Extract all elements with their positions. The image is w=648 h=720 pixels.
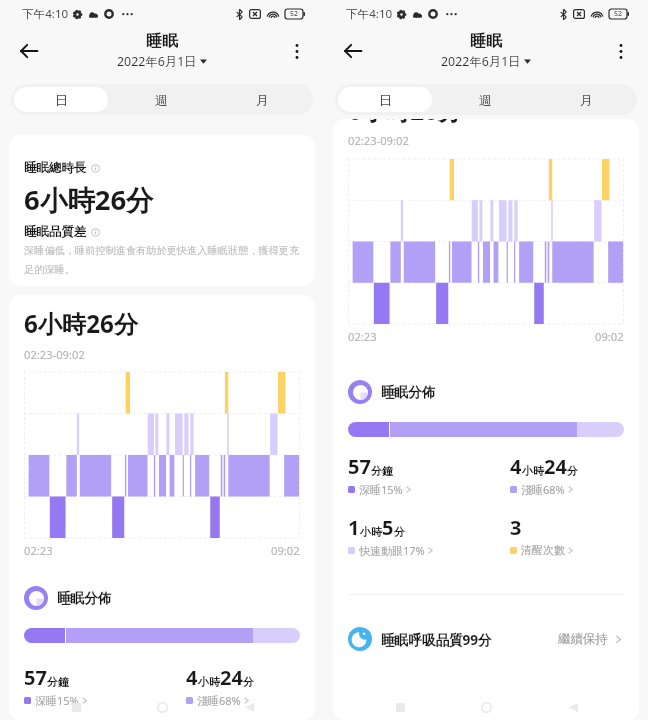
button[interactable]: 日 <box>338 87 432 112</box>
staticText: 睡眠分佈 <box>381 384 436 401</box>
staticText: 02:23-09:02 <box>24 347 85 362</box>
staticText: 分 <box>394 525 405 539</box>
staticText: 分鐘 <box>47 675 69 689</box>
button[interactable]: 睡眠呼吸品質99分 <box>348 595 624 683</box>
staticText: 09:02 <box>595 329 624 344</box>
button[interactable]: Recents <box>65 696 87 718</box>
button[interactable]: Home <box>475 696 497 718</box>
staticText: 6小時26分 <box>24 307 139 340</box>
staticText: 淺睡68% <box>197 693 241 708</box>
staticText: 淺睡68% <box>521 482 565 497</box>
staticText: 下午4:10 <box>346 6 393 22</box>
staticText: 57 <box>348 453 371 480</box>
staticText: 繼續保持 <box>558 631 608 647</box>
staticText: 下午4:10 <box>22 6 69 22</box>
staticText: 4 <box>510 453 522 480</box>
button[interactable]: Back <box>562 696 584 718</box>
staticText: 02:23 <box>24 543 53 558</box>
staticText: 睡眠 <box>470 31 502 51</box>
staticText: 09:02 <box>271 543 300 558</box>
button[interactable]: 4 <box>186 664 254 708</box>
button[interactable]: 1 <box>348 514 435 558</box>
button[interactable]: 週 <box>435 84 536 115</box>
staticText: 深睡偏低，睡前控制進食有助於更快進入睡眠狀態，獲得更充 足的深睡。 <box>24 244 300 276</box>
staticText: 1 <box>348 514 360 541</box>
button[interactable]: More options <box>283 37 311 65</box>
staticText: 6小時26分 <box>348 119 463 127</box>
staticText: 52 <box>614 9 623 19</box>
staticText: 分 <box>243 675 254 689</box>
staticText: 52 <box>290 9 299 19</box>
staticText: 深睡15% <box>359 482 403 497</box>
staticText: 小時 <box>360 525 382 539</box>
staticText: 月 <box>256 92 269 108</box>
staticText: 3 <box>510 514 522 541</box>
staticText: 分 <box>567 464 578 478</box>
staticText: 24 <box>544 453 567 480</box>
button[interactable]: 月 <box>212 84 313 115</box>
staticText: 睡眠呼吸品質99分 <box>381 630 492 649</box>
button[interactable]: 週 <box>111 84 212 115</box>
staticText: 4 <box>186 664 198 691</box>
staticText: 睡眠分佈 <box>57 590 112 607</box>
button[interactable]: Back <box>14 36 44 66</box>
staticText: 分鐘 <box>371 464 393 478</box>
staticText: 睡眠總時長 <box>24 160 86 176</box>
staticText: 02:23 <box>348 329 377 344</box>
button[interactable]: 月 <box>536 84 637 115</box>
button[interactable]: 4 <box>510 453 578 497</box>
staticText: 02:23-09:02 <box>348 133 409 148</box>
staticText: 小時 <box>522 464 544 478</box>
button[interactable]: More options <box>607 37 635 65</box>
button[interactable]: 57 <box>24 664 89 708</box>
staticText: 2022年6月1日 <box>441 53 521 70</box>
button[interactable]: Home <box>151 696 173 718</box>
staticText: 2022年6月1日 <box>117 53 197 70</box>
button[interactable]: Recents <box>389 696 411 718</box>
button[interactable]: Back <box>238 696 260 718</box>
button[interactable]: 2022年6月1日 <box>117 53 207 70</box>
staticText: 月 <box>580 92 593 108</box>
staticText: 日 <box>55 92 68 108</box>
staticText: 5 <box>382 514 394 541</box>
button[interactable]: Back <box>338 36 368 66</box>
button[interactable]: 3 <box>510 514 575 557</box>
staticText: 24 <box>220 664 243 691</box>
staticText: 6小時26分 <box>24 181 154 219</box>
staticText: 57 <box>24 664 47 691</box>
staticText: 深睡15% <box>35 693 79 708</box>
staticText: 日 <box>379 92 392 108</box>
staticText: 快速動眼17% <box>359 543 425 558</box>
staticText: 週 <box>479 92 492 108</box>
staticText: 睡眠品質差 <box>24 224 86 240</box>
staticText: 清醒次數 <box>521 543 565 557</box>
staticText: 週 <box>155 92 168 108</box>
button[interactable]: 日 <box>14 87 108 112</box>
button[interactable]: 2022年6月1日 <box>441 53 531 70</box>
staticText: 睡眠 <box>146 31 178 51</box>
staticText: 小時 <box>198 675 220 689</box>
button[interactable]: 57 <box>348 453 413 497</box>
